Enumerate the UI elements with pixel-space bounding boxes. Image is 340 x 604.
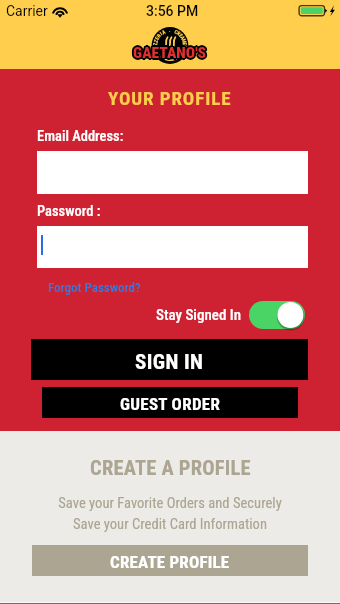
staticText: YOUR PROFILE <box>108 87 232 109</box>
staticText: CREATE A PROFILE <box>90 456 251 480</box>
staticText: Password : <box>37 203 101 220</box>
staticText: Carrier <box>6 3 48 19</box>
staticText: Email Address: <box>37 128 124 145</box>
staticText: SIGN IN <box>135 350 204 375</box>
button[interactable]: Forgot Password? <box>48 280 141 295</box>
button[interactable]: SIGN IN <box>31 339 308 380</box>
button[interactable]: GUEST ORDER <box>42 387 298 418</box>
staticText: Stay Signed In <box>156 306 242 324</box>
staticText: GUEST ORDER <box>120 394 221 414</box>
button[interactable]: CREATE PROFILE <box>32 545 308 576</box>
staticText: CREATE PROFILE <box>110 552 230 572</box>
staticText: Save your Favorite Orders and Securely S… <box>0 494 340 533</box>
button[interactable]: Password input <box>37 226 308 268</box>
staticText: 3:56 PM <box>146 3 199 19</box>
button[interactable]: Stay signed in toggle <box>249 301 305 329</box>
